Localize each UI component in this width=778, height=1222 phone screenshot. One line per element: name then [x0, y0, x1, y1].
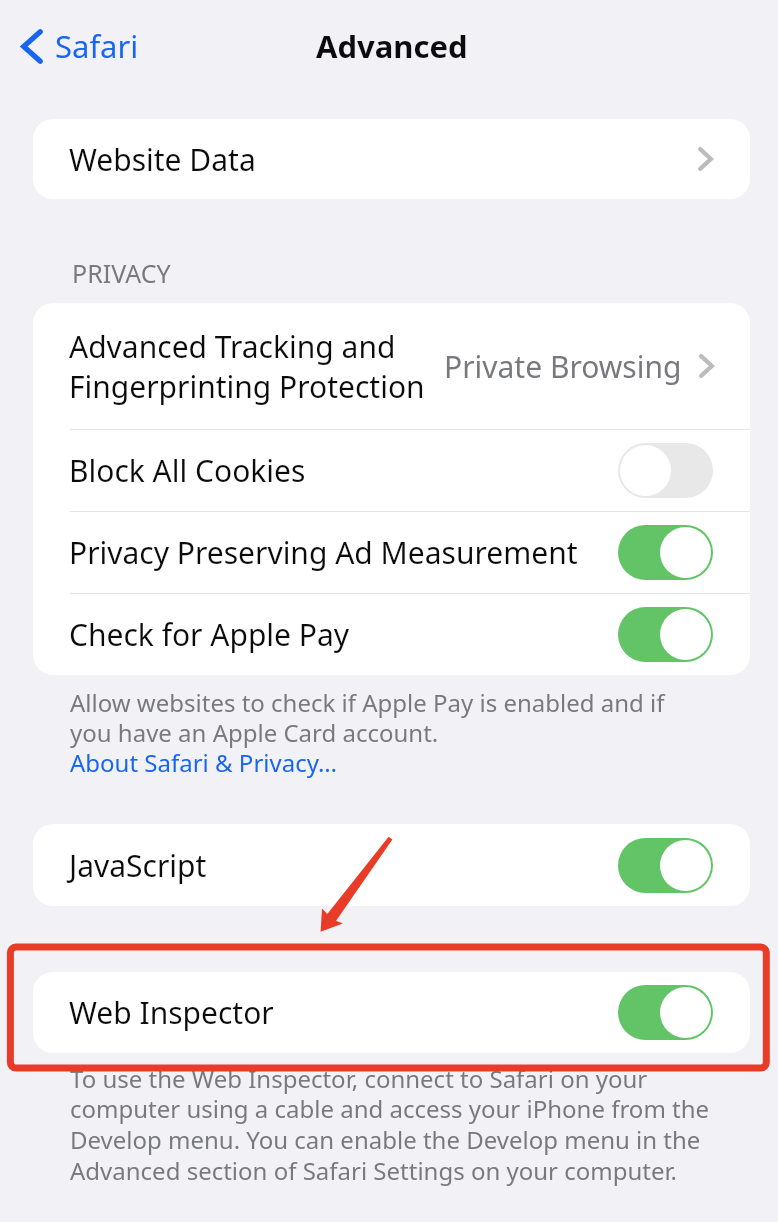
staticText: Web Inspector	[69, 992, 274, 1033]
staticText: Safari	[55, 25, 139, 67]
button[interactable]: Block All Cookies	[33, 430, 750, 511]
staticText: PRIVACY	[72, 256, 171, 290]
staticText: Allow websites to check if Apple Pay is …	[70, 686, 665, 779]
staticText: Advanced Tracking and Fingerprinting Pro…	[69, 326, 425, 407]
staticText: Check for Apple Pay	[69, 614, 350, 655]
button[interactable]: Web Inspector	[33, 972, 750, 1053]
other: Back	[20, 29, 43, 64]
button[interactable]: Allow websites to check if Apple Pay is …	[70, 686, 665, 779]
button[interactable]: Toggle on	[618, 525, 713, 580]
button[interactable]: Website Data	[33, 119, 750, 199]
staticText: Website Data	[69, 139, 256, 180]
button[interactable]: Back	[20, 25, 139, 67]
staticText: Block All Cookies	[69, 450, 306, 491]
other: Open	[698, 147, 713, 171]
button[interactable]: Toggle off	[618, 443, 713, 498]
button[interactable]: Toggle on	[618, 985, 713, 1040]
button[interactable]: Privacy Preserving Ad Measurement	[33, 512, 750, 593]
staticText: JavaScript	[69, 845, 207, 886]
staticText: Privacy Preserving Ad Measurement	[69, 532, 578, 573]
staticText: Private Browsing	[444, 346, 682, 387]
button[interactable]: Toggle on	[618, 838, 713, 893]
button[interactable]: Advanced Tracking and Fingerprinting Pro…	[33, 303, 750, 429]
button[interactable]: Toggle on	[618, 607, 713, 662]
staticText: To use the Web Inspector, connect to Saf…	[70, 1062, 710, 1187]
other: Open	[699, 354, 714, 378]
button[interactable]: Check for Apple Pay	[33, 594, 750, 675]
button[interactable]: JavaScript	[33, 824, 750, 906]
staticText: Advanced	[316, 25, 468, 67]
